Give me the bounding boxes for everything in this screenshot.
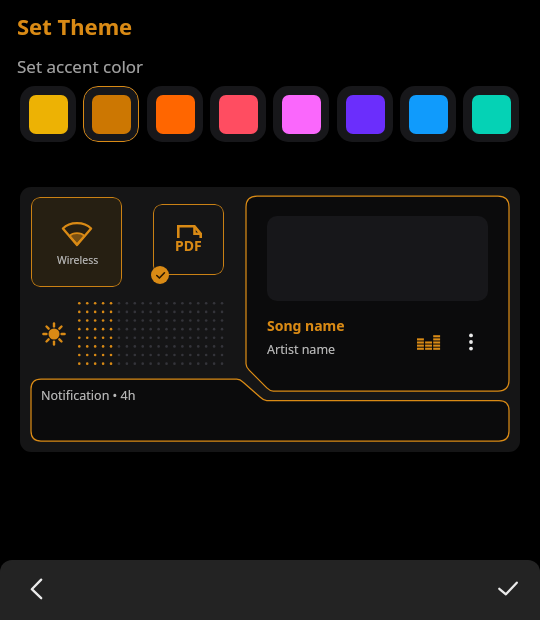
staticText: PDF xyxy=(175,236,202,255)
button[interactable]: Accent color 8 xyxy=(463,86,519,142)
button[interactable]: Accent color 5 xyxy=(273,86,329,142)
button[interactable]: Selected xyxy=(151,266,169,284)
other: Brightness level xyxy=(42,322,66,346)
staticText: Set accent color xyxy=(17,55,144,78)
button[interactable]: Accent color 7 xyxy=(400,86,456,142)
staticText: Artist name xyxy=(267,341,336,358)
button[interactable]: Accent color 4 xyxy=(210,86,266,142)
button[interactable]: Accent color 3 xyxy=(147,86,203,142)
staticText: Set Theme xyxy=(17,11,133,41)
button[interactable]: More options xyxy=(460,331,482,353)
button[interactable]: Wireless xyxy=(31,197,122,287)
button[interactable]: Brightness xyxy=(78,302,225,366)
button[interactable]: Confirm xyxy=(481,567,527,613)
staticText: Wireless xyxy=(57,253,99,267)
button[interactable]: Equalizer xyxy=(417,329,441,351)
button[interactable]: Accent color 2 xyxy=(83,86,139,142)
button[interactable]: Accent color 1 xyxy=(20,86,76,142)
button[interactable]: PDF xyxy=(153,204,224,275)
staticText: Song name xyxy=(267,316,345,335)
button[interactable]: Back xyxy=(13,567,59,613)
staticText: Notification • 4h xyxy=(41,387,136,404)
button[interactable]: Accent color 6 xyxy=(337,86,393,142)
